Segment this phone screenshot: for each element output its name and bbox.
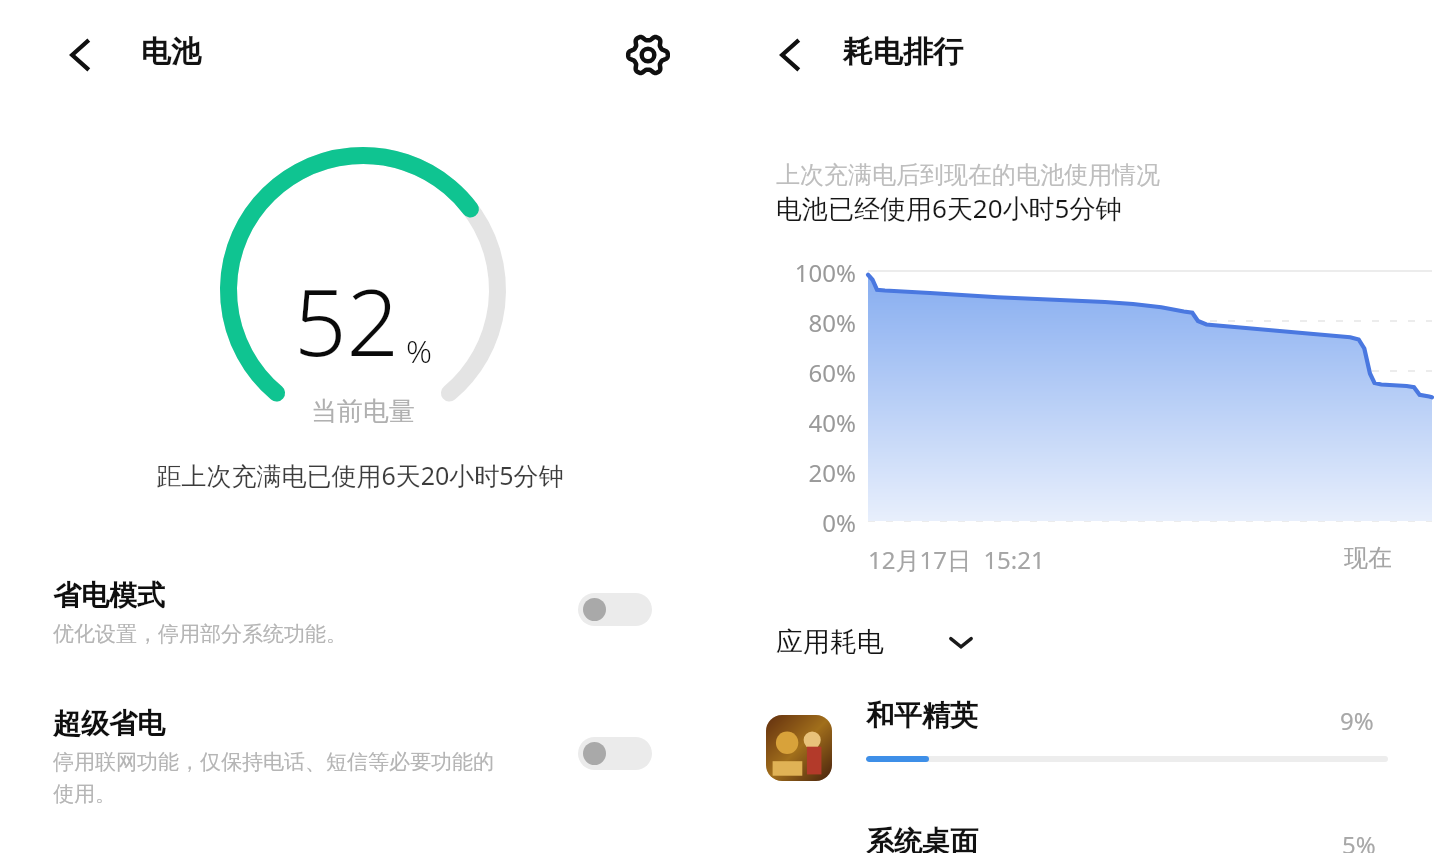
staticText: 0% xyxy=(760,506,856,539)
staticText: 20% xyxy=(760,456,856,489)
staticText: 停用联网功能，仅保持电话、短信等必要功能的 使用。 xyxy=(53,749,494,807)
staticText: 耗电排行 xyxy=(843,33,963,71)
button[interactable]: 超级省电 xyxy=(578,737,652,770)
button[interactable]: 和平精英 xyxy=(720,690,1440,800)
staticText: 5% xyxy=(1342,828,1376,853)
staticText: 和平精英 xyxy=(866,698,978,733)
button[interactable]: Back xyxy=(55,29,107,81)
staticText: 距上次充满电已使用6天20小时5分钟 xyxy=(0,458,720,492)
button[interactable]: Settings xyxy=(618,25,678,85)
staticText: 超级省电 xyxy=(53,706,165,741)
staticText: % xyxy=(406,329,432,373)
button[interactable]: 省电模式 xyxy=(578,593,652,626)
staticText: 40% xyxy=(760,406,856,439)
staticText: 当前电量 xyxy=(220,395,506,428)
staticText: 上次充满电后到现在的电池使用情况 xyxy=(776,160,1160,190)
button[interactable]: 超级省电 xyxy=(0,686,720,806)
staticText: 优化设置，停用部分系统功能。 xyxy=(53,621,347,647)
staticText: 9% xyxy=(1340,704,1374,737)
staticText: 应用耗电 xyxy=(776,625,884,659)
staticText: 省电模式 xyxy=(53,578,165,613)
button[interactable]: 省电模式 xyxy=(0,558,720,678)
staticText: 系统桌面 xyxy=(866,824,978,853)
staticText: 现在 xyxy=(1344,543,1392,573)
button[interactable]: 应用耗电 xyxy=(776,614,978,670)
staticText: 12月17日 15:21 xyxy=(868,543,1045,576)
staticText: 电池已经使用6天20小时5分钟 xyxy=(776,190,1122,226)
staticText: 52 xyxy=(294,258,400,383)
staticText: 60% xyxy=(760,356,856,389)
staticText: 电池 xyxy=(141,33,201,71)
staticText: 80% xyxy=(760,306,856,339)
button[interactable]: Back xyxy=(765,29,817,81)
staticText: 100% xyxy=(760,256,856,289)
